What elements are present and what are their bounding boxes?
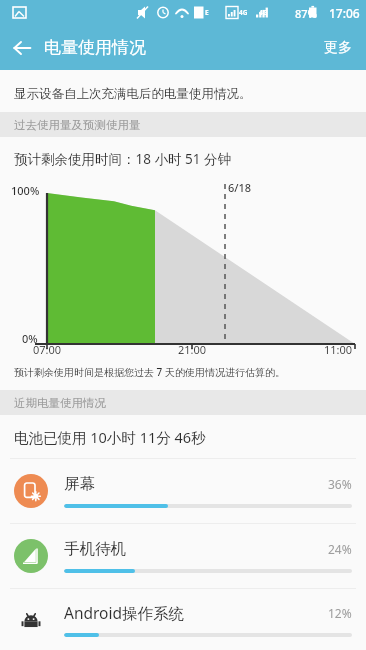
staticText: 21:00 — [178, 342, 207, 357]
staticText: 显示设备自上次充满电后的电量使用情况。 — [14, 86, 252, 102]
button[interactable]: 返回 — [0, 26, 44, 70]
staticText: E — [205, 8, 209, 17]
staticText: 过去使用量及预测使用量 — [14, 118, 141, 132]
staticText: Android操作系统 — [64, 602, 328, 623]
staticText: 4G — [239, 8, 248, 17]
button[interactable]: 更多 — [310, 25, 366, 70]
staticText: 12% — [328, 605, 352, 621]
staticText: 0% — [22, 331, 38, 346]
staticText: 手机待机 — [64, 539, 328, 559]
staticText: 更多 — [324, 39, 352, 57]
staticText: 4G — [259, 8, 268, 17]
staticText: 电量使用情况 — [44, 37, 146, 58]
button[interactable]: Android操作系统 — [0, 589, 366, 650]
button[interactable]: 屏幕 — [0, 459, 366, 523]
staticText: 11:00 — [324, 342, 353, 357]
staticText: 预计剩余使用时间：18 小时 51 分钟 — [14, 150, 231, 168]
staticText: 87% — [295, 6, 317, 21]
staticText: 36% — [328, 476, 352, 492]
button[interactable]: 手机待机 — [0, 524, 366, 588]
staticText: 100% — [11, 183, 40, 198]
staticText: 17:06 — [329, 5, 360, 21]
staticText: 07:00 — [33, 342, 62, 357]
staticText: 6/18 — [228, 180, 252, 195]
staticText: 电池已使用 10小时 11分 46秒 — [14, 427, 206, 447]
staticText: 屏幕 — [64, 474, 328, 494]
staticText: 近期电量使用情况 — [14, 396, 106, 410]
staticText: 预计剩余使用时间是根据您过去 7 天的使用情况进行估算的。 — [14, 365, 285, 379]
staticText: 24% — [328, 541, 352, 557]
